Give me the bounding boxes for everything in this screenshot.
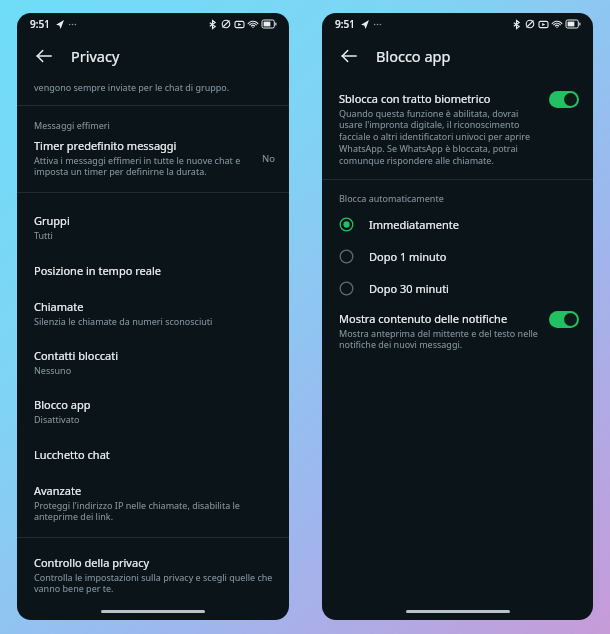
button[interactable]: Dopo 30 minuti [322, 274, 593, 303]
staticText: Contatti bloccati [34, 348, 118, 363]
button[interactable]: Toggle [549, 91, 579, 108]
staticText: Lucchetto chat [34, 447, 110, 462]
button[interactable]: Chiamate [17, 290, 289, 339]
button[interactable]: Back [29, 41, 59, 71]
staticText: Controlla le impostazioni sulla privacy … [34, 571, 273, 595]
staticText: Quando questa funzione è abilitata, dovr… [339, 107, 530, 167]
staticText: vengono sempre inviate per le chat di gr… [34, 81, 230, 93]
staticText: Nessuno [34, 364, 72, 376]
button[interactable]: Posizione in tempo reale [17, 253, 289, 290]
button[interactable]: Contatti bloccati [17, 339, 289, 388]
staticText: Timer predefinito messaggi [34, 138, 177, 153]
staticText: Sblocca con tratto biometrico [339, 91, 491, 106]
staticText: Messaggi effimeri [34, 119, 110, 131]
staticText: Immediatamente [369, 217, 459, 232]
staticText: Chiamate [34, 299, 84, 314]
button[interactable]: Timer predefinito messaggi [17, 138, 289, 192]
staticText: Blocco app [34, 397, 91, 412]
button[interactable]: Lucchetto chat [17, 437, 289, 474]
staticText: 9:51 [335, 17, 355, 31]
staticText: Controllo della privacy [34, 555, 150, 570]
staticText: Silenzia le chiamate da numeri sconosciu… [34, 315, 213, 327]
button[interactable]: Avanzate [17, 474, 289, 537]
staticText: No [262, 152, 275, 165]
staticText: Blocca automaticamente [339, 192, 444, 204]
button[interactable]: Blocco app [17, 388, 289, 437]
staticText: Attiva i messaggi effimeri in tutte le n… [34, 154, 241, 178]
button[interactable]: Toggle [549, 311, 579, 328]
staticText: Privacy [71, 46, 120, 66]
button[interactable]: Mostra contenuto delle notifiche [322, 311, 593, 363]
staticText: 9:51 [30, 17, 50, 31]
button[interactable]: Immediatamente [322, 210, 593, 239]
button[interactable]: Gruppi [17, 204, 289, 253]
staticText: Dopo 1 minuto [369, 249, 447, 264]
button[interactable]: Sblocca con tratto biometrico [322, 87, 593, 179]
staticText: Blocco app [376, 46, 451, 66]
staticText: Mostra contenuto delle notifiche [339, 311, 508, 326]
staticText: Disattivato [34, 413, 80, 425]
staticText: Avanzate [34, 483, 82, 498]
staticText: Posizione in tempo reale [34, 263, 161, 278]
button[interactable]: Back [334, 41, 364, 71]
staticText: Proteggi l'indirizzo IP nelle chiamate, … [34, 499, 240, 523]
staticText: Tutti [34, 229, 53, 241]
button[interactable]: Dopo 1 minuto [322, 242, 593, 271]
staticText: Mostra anteprima del mittente e del test… [339, 327, 538, 351]
button[interactable]: Controllo della privacy [17, 546, 289, 604]
staticText: Gruppi [34, 213, 70, 228]
staticText: Dopo 30 minuti [369, 281, 449, 296]
